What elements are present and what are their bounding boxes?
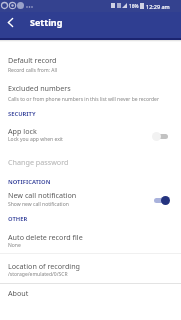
- button[interactable]: [0, 150, 181, 173]
- staticText: Record calls from: All: [8, 67, 57, 74]
- staticText: None: [8, 242, 21, 249]
- staticText: Show new call notification: [8, 201, 69, 208]
- staticText: Excluded numbers: [8, 83, 71, 93]
- staticText: About: [8, 288, 29, 298]
- staticText: Calls to or from phone numbers in this l…: [8, 96, 159, 103]
- button[interactable]: [0, 186, 181, 212]
- button[interactable]: [0, 121, 181, 148]
- staticText: Change password: [8, 157, 69, 167]
- staticText: Location of recording: [8, 261, 81, 271]
- staticText: OTHER: [8, 215, 28, 223]
- staticText: Default record: [8, 55, 57, 65]
- staticText: NOTIFICATION: [8, 178, 51, 186]
- button[interactable]: [0, 12, 21, 33]
- staticText: Lock you app when exit: [8, 136, 63, 143]
- staticText: 16%: [129, 3, 139, 10]
- button[interactable]: [0, 256, 181, 283]
- button[interactable]: [0, 50, 181, 79]
- staticText: /storage/emulated/0/SCR: [8, 271, 68, 278]
- staticText: App lock: [8, 126, 37, 136]
- button[interactable]: [0, 284, 181, 304]
- staticText: SECURITY: [8, 110, 36, 118]
- staticText: 12:29 am: [146, 3, 170, 10]
- staticText: Setting: [30, 16, 63, 28]
- button[interactable]: [0, 227, 181, 253]
- button[interactable]: [0, 79, 181, 108]
- staticText: New call notification: [8, 190, 77, 200]
- staticText: Auto delete record file: [8, 232, 83, 242]
